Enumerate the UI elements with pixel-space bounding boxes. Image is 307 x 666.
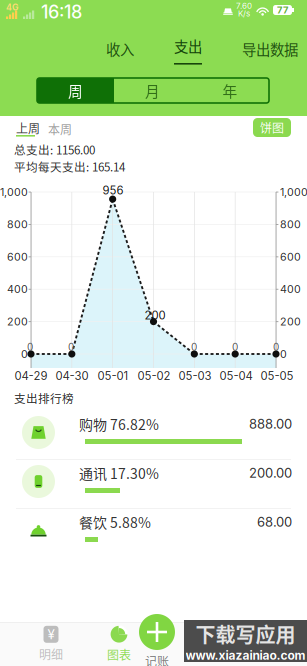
staticText: 200	[144, 309, 165, 322]
staticText: 0	[21, 347, 28, 360]
button[interactable]: 图表	[84, 626, 154, 662]
button[interactable]: 购物 76.82%	[0, 411, 307, 459]
staticText: 05-05	[260, 369, 293, 383]
staticText: 200	[280, 315, 301, 328]
button[interactable]: 餐饮 5.88%	[0, 509, 307, 557]
button[interactable]: 年	[191, 78, 269, 103]
staticText: 年	[222, 80, 237, 101]
button[interactable]: ¥	[16, 626, 86, 662]
staticText: ¥	[47, 626, 54, 642]
staticText: 导出数据	[242, 39, 298, 59]
staticText: 1,000	[0, 185, 28, 198]
staticText: 04-29	[14, 369, 47, 383]
staticText: 600	[280, 250, 301, 263]
button[interactable]: 导出数据	[244, 36, 296, 62]
staticText: 支出排行榜	[14, 390, 74, 406]
staticText: 购物 76.82%	[79, 414, 159, 434]
staticText: 800	[7, 218, 28, 231]
staticText: 本周	[48, 120, 72, 138]
staticText: 956	[102, 184, 123, 197]
staticText: K/s	[238, 9, 250, 18]
staticText: 05-01	[97, 369, 128, 383]
button[interactable]: 收入	[93, 36, 147, 62]
staticText: 收入	[106, 39, 134, 59]
staticText: 支出	[174, 36, 202, 56]
staticText: 200.00	[249, 465, 292, 481]
staticText: 总支出: 1156.00	[14, 141, 95, 158]
button[interactable]: 支出	[161, 36, 215, 66]
button[interactable]: 月	[114, 78, 191, 103]
staticText: 0	[232, 341, 238, 353]
staticText: 图表	[107, 646, 131, 663]
staticText: 0	[68, 341, 74, 353]
staticText: 05-03	[178, 369, 211, 383]
staticText: 800	[280, 218, 301, 231]
staticText: 0	[273, 341, 279, 353]
button[interactable]: 上周	[16, 122, 38, 138]
staticText: 4G	[6, 2, 19, 12]
staticText: 1,000	[280, 185, 307, 198]
staticText: 明细	[39, 645, 63, 663]
staticText: 饼图	[260, 119, 284, 136]
button[interactable]: 饼图	[253, 118, 291, 137]
staticText: 400	[7, 283, 28, 296]
staticText: 下载写应用	[195, 619, 295, 648]
staticText: 05-04	[219, 369, 252, 383]
staticText: www.xiazainiao.com	[185, 648, 305, 663]
staticText: 0	[280, 347, 287, 360]
staticText: 68.00	[257, 514, 292, 530]
staticText: 餐饮 5.88%	[79, 512, 151, 532]
staticText: 周	[68, 80, 83, 101]
staticText: 月	[145, 80, 160, 101]
staticText: 0	[191, 341, 197, 353]
button[interactable]: 记账	[122, 614, 192, 666]
button[interactable]: 本周	[48, 122, 70, 136]
staticText: 上周	[16, 119, 40, 137]
button[interactable]: 通讯 17.30%	[0, 460, 307, 508]
staticText: 200	[7, 315, 28, 328]
staticText: 400	[280, 283, 301, 296]
staticText: 7.60	[236, 1, 252, 11]
staticText: 77	[277, 4, 288, 16]
staticText: 600	[7, 250, 28, 263]
staticText: 通讯 17.30%	[79, 463, 159, 483]
staticText: 0	[27, 341, 33, 353]
staticText: 记账	[145, 652, 169, 666]
staticText: 04-30	[55, 369, 88, 383]
button[interactable]: 周	[37, 78, 114, 103]
staticText: 05-02	[137, 369, 170, 383]
staticText: 888.00	[249, 416, 292, 432]
staticText: 16:18	[41, 1, 82, 23]
staticText: 平均每天支出: 165.14	[14, 158, 125, 175]
